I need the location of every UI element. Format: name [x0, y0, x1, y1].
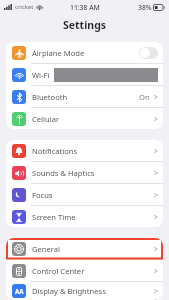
staticText: cricket: [15, 3, 34, 11]
staticText: Screen Time: [32, 212, 76, 222]
other: Open: [153, 245, 158, 253]
staticText: Display & Brightness: [32, 286, 106, 296]
button[interactable]: Cellular: [6, 108, 163, 129]
button[interactable]: Focus: [6, 184, 163, 205]
staticText: Notifications: [32, 146, 78, 156]
button[interactable]: Control Center: [6, 260, 163, 281]
button[interactable]: Airplane Mode: [139, 47, 158, 59]
staticText: Airplane Mode: [32, 48, 85, 58]
staticText: Settings: [63, 18, 107, 32]
staticText: Wi-Fi: [32, 70, 50, 80]
other: Open: [153, 93, 158, 101]
button[interactable]: Screen Time: [6, 206, 163, 227]
other: Open: [153, 287, 158, 295]
button[interactable]: Wi-Fi: [6, 64, 163, 85]
staticText: Bluetooth: [32, 92, 68, 102]
button[interactable]: AA: [6, 282, 163, 300]
button[interactable]: General: [6, 238, 163, 259]
staticText: 38%: [138, 3, 152, 12]
other: Open: [153, 147, 158, 155]
staticText: On: [139, 92, 150, 102]
staticText: AA: [15, 287, 24, 295]
other: Open: [153, 191, 158, 199]
staticText: Control Center: [32, 266, 85, 276]
other: Open: [153, 115, 158, 123]
other: Open: [153, 169, 158, 177]
button[interactable]: Notifications: [6, 140, 163, 161]
button[interactable]: Airplane Mode: [6, 42, 163, 63]
button[interactable]: Sounds & Haptics: [6, 162, 163, 183]
staticText: Focus: [32, 190, 53, 200]
staticText: Cellular: [32, 114, 60, 124]
button[interactable]: Bluetooth: [6, 86, 163, 107]
other: Open: [153, 213, 158, 221]
staticText: General: [32, 244, 60, 254]
staticText: Sounds & Haptics: [32, 168, 95, 178]
other: Open: [153, 267, 158, 275]
staticText: 11:38 AM: [70, 3, 100, 12]
